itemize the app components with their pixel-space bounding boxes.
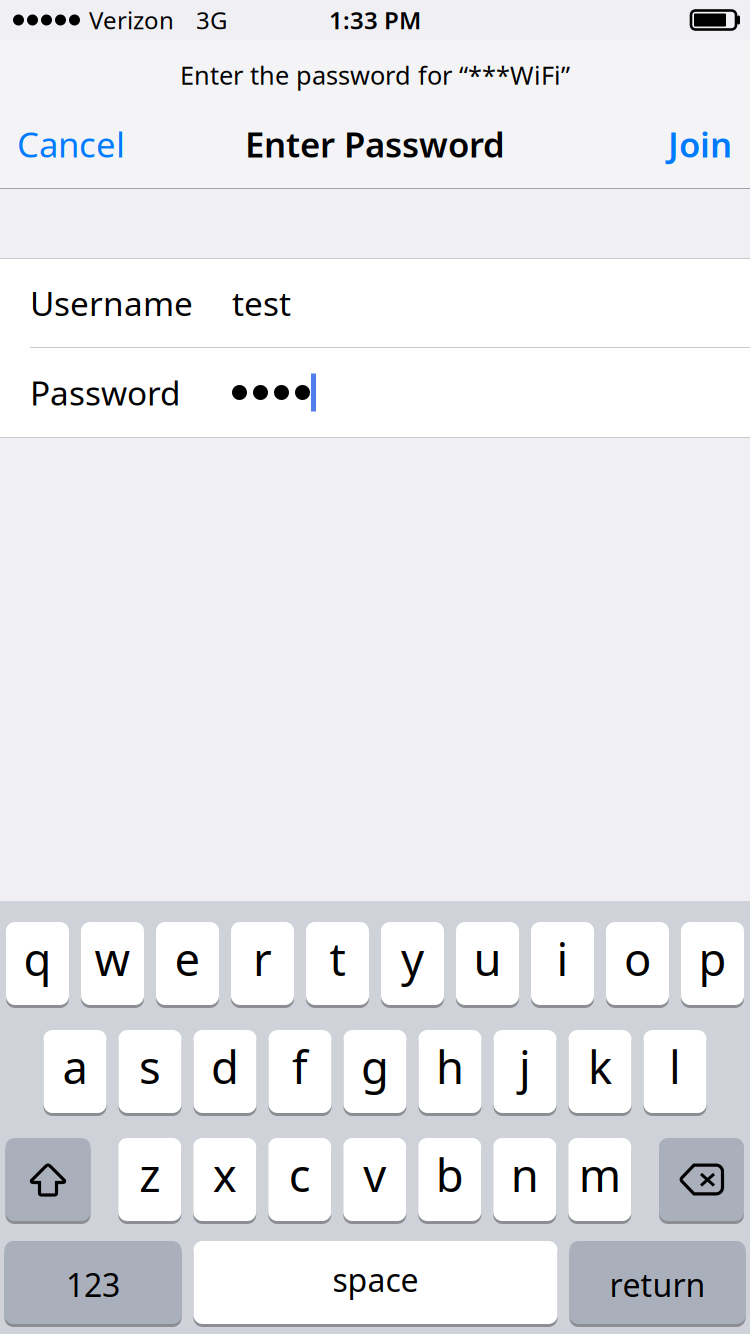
staticText: d [211, 1036, 239, 1097]
button[interactable]: w [81, 922, 144, 1008]
button[interactable]: Delete [659, 1138, 744, 1224]
staticText: o [624, 928, 651, 989]
staticText: x [213, 1144, 237, 1205]
button[interactable]: k [568, 1030, 631, 1116]
staticText: Password [30, 370, 181, 415]
button[interactable]: Password [0, 348, 750, 437]
button[interactable]: z [118, 1138, 181, 1224]
staticText: Join [668, 121, 732, 167]
staticText: h [436, 1036, 464, 1097]
button[interactable]: r [231, 922, 294, 1008]
staticText: v [363, 1144, 386, 1205]
button[interactable]: i [531, 922, 594, 1008]
button[interactable]: m [568, 1138, 631, 1224]
button[interactable]: 123 [4, 1241, 181, 1327]
button[interactable]: e [156, 922, 219, 1008]
staticText: 123 [66, 1263, 120, 1306]
staticText: i [556, 928, 568, 989]
staticText: m [579, 1144, 621, 1205]
button[interactable]: q [6, 922, 69, 1008]
staticText: f [292, 1036, 308, 1097]
button[interactable]: y [381, 922, 444, 1008]
button[interactable]: t [306, 922, 369, 1008]
button[interactable]: c [268, 1138, 331, 1224]
button[interactable]: Username [0, 259, 750, 347]
button[interactable]: j [493, 1030, 556, 1116]
button[interactable]: l [643, 1030, 706, 1116]
staticText: s [139, 1036, 161, 1097]
staticText: e [174, 928, 200, 989]
staticText: Verizon [89, 4, 174, 36]
staticText: u [473, 928, 501, 989]
button[interactable]: n [493, 1138, 556, 1224]
button[interactable]: s [118, 1030, 181, 1116]
staticText: k [588, 1036, 612, 1097]
button[interactable]: u [456, 922, 519, 1008]
staticText: q [23, 928, 51, 989]
button[interactable]: f [268, 1030, 331, 1116]
staticText: c [289, 1144, 311, 1205]
button[interactable]: d [193, 1030, 256, 1116]
staticText: b [436, 1144, 464, 1205]
staticText: Cancel [17, 121, 125, 167]
staticText: space [332, 1258, 418, 1301]
button[interactable]: h [418, 1030, 481, 1116]
button[interactable]: p [681, 922, 744, 1008]
staticText: Enter Password [245, 121, 505, 167]
staticText: w [94, 928, 130, 989]
staticText: t [329, 928, 345, 989]
staticText: Enter the password for “***WiFi” [180, 58, 570, 92]
staticText: a [62, 1036, 87, 1097]
button[interactable]: o [606, 922, 669, 1008]
button[interactable]: return [569, 1241, 745, 1327]
staticText: test [232, 281, 291, 325]
staticText: return [609, 1263, 705, 1306]
button[interactable]: g [343, 1030, 406, 1116]
staticText: 1:33 PM [329, 4, 421, 36]
staticText: n [511, 1144, 539, 1205]
staticText: r [253, 928, 272, 989]
button[interactable]: x [193, 1138, 256, 1224]
staticText: l [669, 1036, 681, 1097]
staticText: 3G [196, 4, 227, 36]
staticText: Username [30, 281, 193, 325]
button[interactable]: Join [668, 106, 750, 188]
staticText: y [401, 928, 424, 989]
button[interactable]: Cancel [0, 106, 125, 188]
staticText: p [698, 928, 726, 989]
staticText: j [519, 1036, 531, 1097]
staticText: z [139, 1144, 160, 1205]
button[interactable]: b [418, 1138, 481, 1224]
button[interactable]: space [193, 1241, 557, 1327]
button[interactable]: a [43, 1030, 106, 1116]
staticText: g [361, 1036, 389, 1097]
button[interactable]: Shift [5, 1138, 90, 1224]
button[interactable]: v [343, 1138, 406, 1224]
